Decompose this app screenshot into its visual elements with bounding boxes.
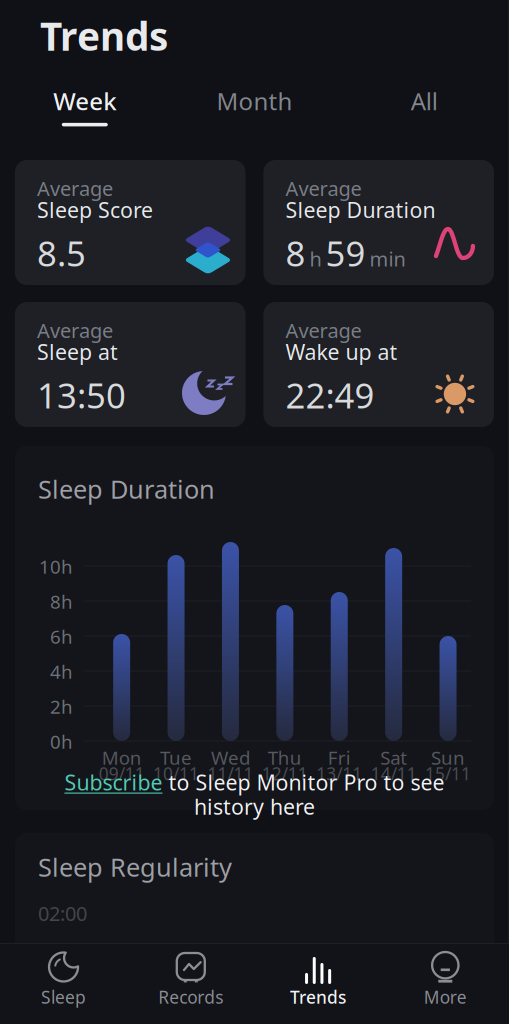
button[interactable]: Week: [0, 85, 170, 126]
button[interactable]: Records: [127, 943, 254, 1024]
staticText: 02:00: [38, 900, 87, 927]
button[interactable]: More: [382, 943, 509, 1024]
staticText: Records: [158, 985, 223, 1008]
staticText: Fri: [328, 745, 351, 770]
staticText: Sleep at: [37, 337, 118, 366]
staticText: 2h: [50, 694, 73, 719]
staticText: Average: [285, 175, 361, 202]
staticText: Sun: [431, 745, 465, 770]
button[interactable]: Trends: [254, 943, 382, 1024]
staticText: Wake up at: [285, 337, 397, 366]
button[interactable]: Average: [263, 160, 494, 285]
staticText: 6h: [50, 624, 73, 649]
staticText: 4h: [50, 659, 73, 684]
staticText: 15/11: [425, 762, 471, 785]
button[interactable]: Sleep: [0, 943, 127, 1024]
staticText: 10h: [39, 554, 73, 579]
staticText: Sleep Regularity: [38, 850, 232, 884]
staticText: Average: [37, 175, 113, 202]
staticText: Average: [285, 317, 361, 344]
staticText: Subscribe: [64, 768, 162, 796]
staticText: 13:50: [37, 372, 126, 418]
staticText: All: [411, 85, 438, 117]
staticText: 10/11: [153, 762, 199, 785]
staticText: 59: [325, 230, 365, 276]
staticText: More: [424, 985, 467, 1008]
staticText: to Sleep Monitor Pro to see: [162, 768, 444, 796]
staticText: Average: [37, 317, 113, 344]
staticText: Month: [216, 85, 292, 117]
staticText: Trends: [40, 10, 168, 61]
staticText: Tue: [160, 745, 192, 770]
staticText: Trends: [290, 985, 346, 1008]
button[interactable]: Subscribe: [64, 768, 162, 796]
staticText: 8: [285, 230, 305, 276]
staticText: Sleep Duration: [285, 195, 435, 224]
button[interactable]: Average: [15, 302, 245, 427]
staticText: Wed: [211, 745, 250, 770]
staticText: 11/11: [207, 762, 253, 785]
staticText: Week: [53, 85, 116, 117]
button[interactable]: Average: [263, 302, 494, 427]
staticText: 8.5: [37, 230, 86, 276]
staticText: 22:49: [285, 372, 374, 418]
staticText: Sleep: [41, 985, 86, 1008]
staticText: Sleep Score: [37, 195, 153, 224]
button[interactable]: All: [339, 85, 509, 117]
staticText: Sleep Duration: [38, 472, 215, 506]
staticText: history here: [194, 792, 315, 821]
staticText: Mon: [102, 745, 142, 770]
staticText: 0h: [50, 729, 73, 754]
staticText: Sat: [380, 745, 407, 770]
staticText: min: [369, 245, 405, 272]
staticText: Thu: [268, 745, 302, 770]
staticText: 8h: [50, 589, 73, 614]
staticText: 13/11: [316, 762, 362, 785]
staticText: 09/11: [99, 762, 145, 785]
button[interactable]: Average: [15, 160, 245, 285]
staticText: 12/11: [262, 762, 308, 785]
staticText: h: [309, 245, 321, 272]
staticText: 14/11: [371, 762, 417, 785]
button[interactable]: Month: [170, 85, 339, 117]
